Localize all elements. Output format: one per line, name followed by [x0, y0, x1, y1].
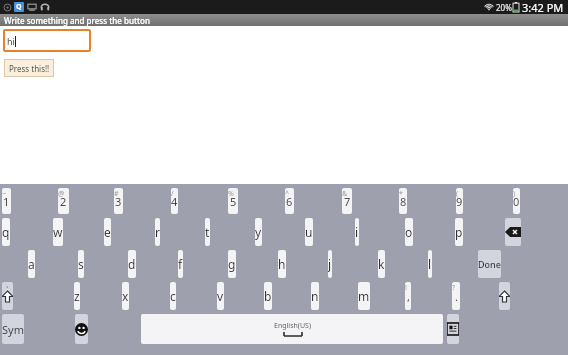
button[interactable]: 7 [342, 188, 352, 214]
staticText: Sym [2, 322, 24, 337]
button[interactable]: b [264, 282, 272, 310]
staticText: s [78, 256, 84, 272]
staticText: ~ [2, 189, 7, 199]
staticText: English(US) [274, 321, 311, 331]
staticText: p [455, 224, 463, 240]
staticText: x [122, 288, 129, 304]
staticText: k [378, 256, 385, 272]
staticText: 1 [3, 194, 10, 209]
button[interactable]: q [2, 218, 10, 246]
button[interactable]: l [428, 250, 432, 278]
button[interactable]: 1 [2, 188, 11, 214]
button[interactable]: Done [478, 250, 501, 278]
staticText: t [205, 224, 210, 240]
staticText: e [104, 224, 111, 240]
staticText: hi [7, 35, 15, 47]
staticText: 3:42 PM [522, 0, 564, 14]
staticText: f [178, 256, 183, 272]
button[interactable]: 9 [456, 188, 463, 214]
button[interactable]: 0 [513, 188, 520, 214]
button[interactable]: h [278, 250, 286, 278]
button[interactable]: k [378, 250, 385, 278]
staticText: ! [405, 283, 407, 293]
staticText: Done [478, 258, 501, 270]
button[interactable]: o [405, 218, 413, 246]
button[interactable]: . [452, 282, 460, 310]
staticText: & [342, 189, 348, 199]
staticText: o [405, 224, 413, 240]
button[interactable]: Backspace [505, 218, 521, 246]
staticText: * [399, 189, 403, 199]
staticText: ( [456, 189, 459, 199]
staticText: c [170, 288, 176, 304]
button[interactable]: d [128, 250, 136, 278]
button[interactable]: r [155, 218, 160, 246]
button[interactable]: Keyboard settings [447, 314, 459, 344]
button[interactable]: 6 [285, 188, 294, 214]
button[interactable]: g [228, 250, 236, 278]
button[interactable]: hi [3, 29, 91, 52]
staticText: 6 [286, 194, 293, 209]
staticText: 7 [344, 194, 351, 209]
button[interactable]: p [455, 218, 463, 246]
button[interactable]: w [53, 218, 63, 246]
button[interactable]: 5 [228, 188, 238, 214]
button[interactable]: 4 [171, 188, 178, 214]
button[interactable]: s [78, 250, 84, 278]
button[interactable]: i [355, 218, 359, 246]
button[interactable]: z [74, 282, 80, 310]
staticText: u [305, 224, 313, 240]
staticText: , [407, 289, 410, 304]
staticText: w [53, 224, 63, 240]
staticText: @ [58, 189, 65, 199]
staticText: ? [452, 283, 456, 293]
button[interactable]: j [328, 250, 332, 278]
staticText: h [278, 256, 286, 272]
button[interactable]: 8 [399, 188, 407, 214]
button[interactable]: 3 [114, 188, 123, 214]
staticText: % [228, 189, 234, 199]
button[interactable]: u [305, 218, 313, 246]
staticText: d [128, 256, 136, 272]
staticText: b [264, 288, 272, 304]
staticText: g [228, 256, 236, 272]
button[interactable]: Shift [2, 282, 13, 310]
staticText: 20% [496, 2, 512, 13]
button[interactable]: n [311, 282, 319, 310]
staticText: Press this!! [9, 63, 50, 74]
staticText: n [311, 288, 319, 304]
button[interactable]: 2 [58, 188, 69, 214]
staticText: j [328, 256, 332, 272]
button[interactable]: a [28, 250, 35, 278]
button[interactable]: v [217, 282, 224, 310]
staticText: / [171, 189, 174, 199]
staticText: 0 [513, 194, 520, 209]
button[interactable]: Sym [2, 314, 24, 344]
button[interactable]: , [405, 282, 411, 310]
staticText: l [428, 256, 432, 272]
button[interactable]: English(US) [141, 314, 443, 344]
staticText: 3 [115, 194, 122, 209]
button[interactable]: y [255, 218, 262, 246]
button[interactable]: e [104, 218, 111, 246]
button[interactable]: c [170, 282, 176, 310]
button[interactable]: m [358, 282, 370, 310]
staticText: a [28, 256, 35, 272]
button[interactable]: Shift [499, 282, 510, 310]
button[interactable]: f [178, 250, 183, 278]
button[interactable]: x [122, 282, 129, 310]
button[interactable]: t [205, 218, 210, 246]
staticText: Q [16, 2, 22, 12]
button[interactable]: Press this!! [4, 59, 54, 77]
staticText: ) [513, 189, 516, 199]
staticText: 8 [400, 194, 407, 209]
button[interactable]: Emoji and voice input [75, 314, 88, 344]
staticText: ^ [285, 189, 290, 199]
staticText: 5 [230, 194, 237, 209]
staticText: Write something and press the button [4, 15, 150, 26]
staticText: v [217, 288, 224, 304]
staticText: 4 [171, 194, 178, 209]
staticText: 2 [60, 194, 67, 209]
staticText: • [6, 283, 9, 293]
staticText: z [74, 288, 80, 304]
